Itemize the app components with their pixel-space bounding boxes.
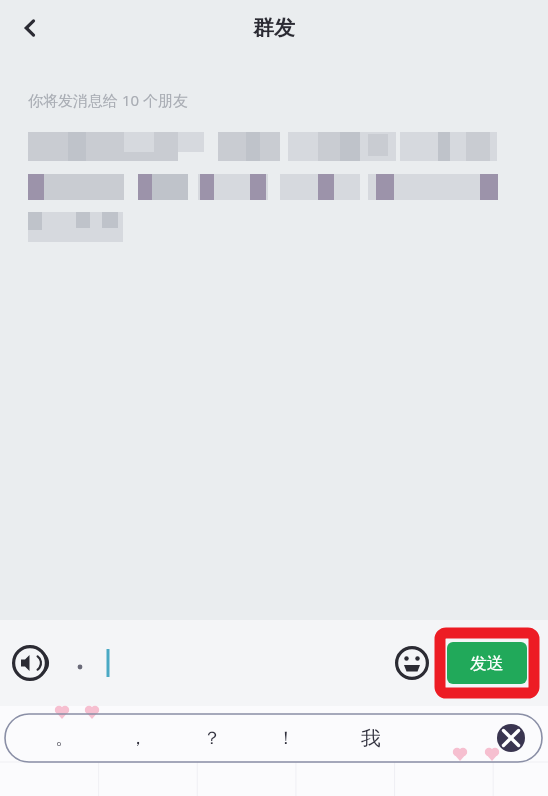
button[interactable]: ， <box>101 714 175 762</box>
staticText: ？ <box>203 727 221 750</box>
button[interactable]: 我 <box>323 714 419 762</box>
staticText: 群发 <box>253 15 295 41</box>
button[interactable]: Voice input <box>8 641 52 685</box>
staticText: 你将发消息给 10 个朋友 <box>28 90 188 110</box>
button[interactable]: 。 <box>27 714 101 762</box>
button[interactable]: 发送 <box>437 630 537 696</box>
button[interactable]: ！ <box>249 714 323 762</box>
button[interactable] <box>62 636 398 690</box>
staticText: 我 <box>361 726 381 751</box>
button[interactable]: Emoji <box>390 641 434 685</box>
staticText: ！ <box>277 727 295 750</box>
button[interactable]: Close keyboard <box>494 721 528 755</box>
button[interactable]: ？ <box>175 714 249 762</box>
staticText: ， <box>129 727 147 750</box>
staticText: 。 <box>55 727 73 750</box>
staticText: 发送 <box>470 653 504 674</box>
button[interactable]: Back <box>8 6 52 50</box>
